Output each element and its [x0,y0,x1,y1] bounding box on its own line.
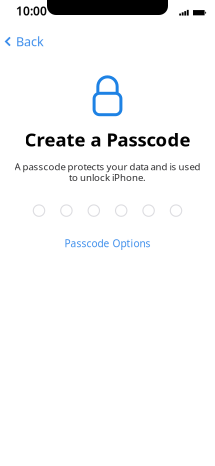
staticText: to unlock iPhone. [69,171,146,184]
staticText: Create a Passcode [24,127,190,152]
staticText: Back [16,33,44,50]
staticText: A passcode protects your data and is use… [14,160,200,173]
staticText: Passcode Options [64,236,150,250]
staticText: 10:00 [16,3,47,19]
button[interactable]: Passcode Options [52,231,162,255]
button[interactable]: Back [0,23,54,55]
